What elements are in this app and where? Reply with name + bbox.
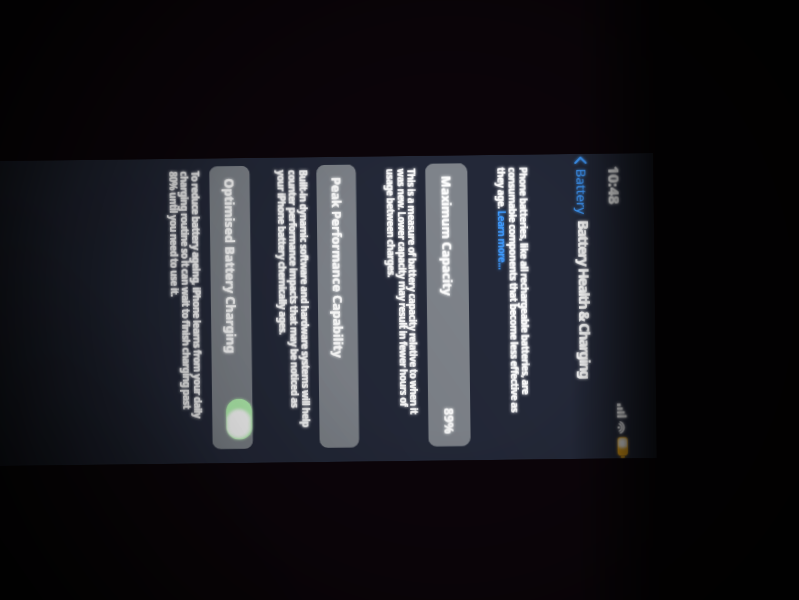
staticText: Optimised Battery Charging bbox=[221, 178, 240, 354]
staticText: Optimised Battery Charging bbox=[221, 178, 240, 354]
staticText: 89% bbox=[440, 408, 458, 434]
staticText: Battery Health & Charging bbox=[573, 220, 595, 378]
staticText: To reduce battery ageing, iPhone learns … bbox=[166, 171, 204, 429]
button[interactable]: Peak Performance Capability bbox=[316, 164, 359, 448]
button[interactable]: Battery bbox=[572, 154, 590, 215]
staticText: 10:48 bbox=[604, 166, 625, 204]
staticText: 89% bbox=[440, 408, 458, 434]
staticText: Peak Performance Capability bbox=[327, 177, 347, 358]
staticText: 10:48 bbox=[604, 166, 625, 204]
staticText: Maximum Capacity bbox=[437, 176, 456, 296]
staticText: Battery Health & Charging bbox=[573, 220, 595, 378]
staticText: Phone batteries, like all rechargeable b… bbox=[494, 167, 533, 425]
button[interactable]: Battery bbox=[572, 154, 590, 215]
button[interactable]: Maximum Capacity bbox=[425, 163, 471, 447]
button[interactable]: Optimised Battery Charging bbox=[209, 166, 253, 449]
staticText: Battery bbox=[572, 169, 590, 215]
staticText: Peak Performance Capability bbox=[327, 177, 347, 358]
staticText: Phone batteries, like all rechargeable b… bbox=[494, 167, 533, 425]
staticText: This is a measure of battery capacity re… bbox=[383, 168, 421, 427]
button[interactable]: Optimised Battery Charging toggle bbox=[226, 399, 252, 440]
button[interactable]: Optimised Battery Charging toggle bbox=[226, 399, 252, 440]
staticText: Built-in dynamic software and hardware s… bbox=[274, 170, 312, 428]
staticText: Battery bbox=[572, 169, 590, 215]
staticText: Maximum Capacity bbox=[437, 176, 456, 296]
staticText: This is a measure of battery capacity re… bbox=[383, 168, 421, 427]
staticText: To reduce battery ageing, iPhone learns … bbox=[166, 171, 204, 429]
staticText: Built-in dynamic software and hardware s… bbox=[274, 170, 312, 428]
